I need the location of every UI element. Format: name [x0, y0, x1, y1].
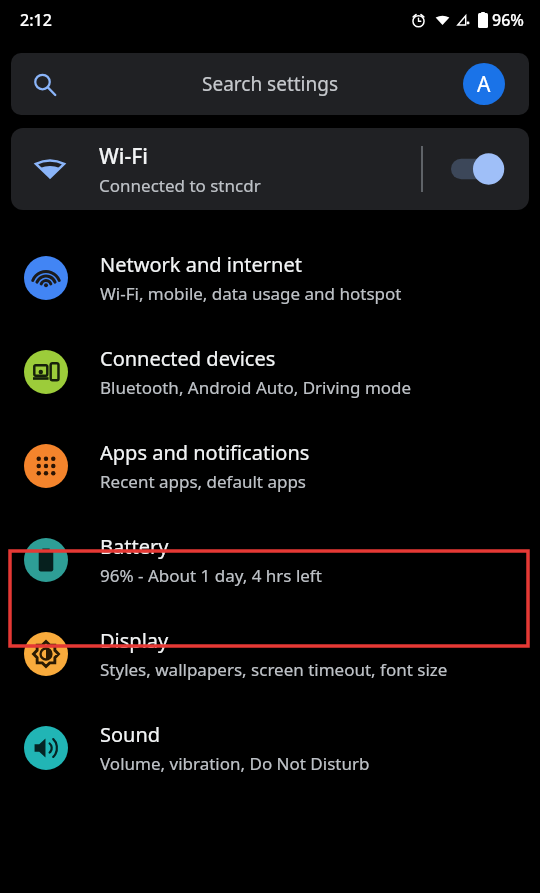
staticText: A: [477, 70, 491, 99]
staticText: Sound: [100, 721, 161, 748]
button[interactable]: Network and internet: [0, 231, 540, 325]
staticText: Bluetooth, Android Auto, Driving mode: [100, 376, 412, 399]
staticText: Wi-Fi: [99, 142, 148, 171]
staticText: Connected to stncdr: [99, 174, 261, 197]
button[interactable]: Account: [463, 63, 505, 105]
staticText: Search settings: [202, 71, 339, 97]
button[interactable]: Search settings: [11, 53, 529, 115]
button[interactable]: Wi-Fi: [11, 128, 529, 210]
button[interactable]: Wi-Fi toggle: [451, 152, 503, 186]
staticText: Styles, wallpapers, screen timeout, font…: [100, 658, 448, 681]
button[interactable]: Sound: [0, 701, 540, 795]
staticText: Volume, vibration, Do Not Disturb: [100, 752, 370, 775]
staticText: 96%: [492, 9, 524, 31]
staticText: Recent apps, default apps: [100, 470, 307, 493]
button[interactable]: Apps and notifications: [0, 419, 540, 513]
staticText: Battery: [100, 533, 169, 560]
staticText: Network and internet: [100, 251, 302, 278]
staticText: Connected devices: [100, 345, 276, 372]
button[interactable]: Connected devices: [0, 325, 540, 419]
staticText: Apps and notifications: [100, 439, 310, 466]
staticText: Wi-Fi, mobile, data usage and hotspot: [100, 282, 402, 305]
staticText: Display: [100, 627, 169, 654]
staticText: 2:12: [20, 9, 52, 31]
button[interactable]: Battery: [0, 513, 540, 607]
staticText: 96% - About 1 day, 4 hrs left: [100, 564, 322, 587]
button[interactable]: Display: [0, 607, 540, 701]
